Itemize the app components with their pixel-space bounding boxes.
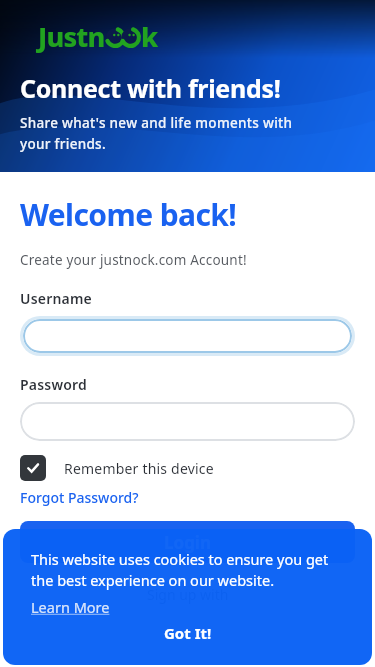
staticText: Sign up with bbox=[147, 585, 229, 604]
button[interactable] bbox=[20, 402, 355, 441]
staticText: Forgot Password? bbox=[20, 488, 139, 507]
button[interactable]: Forgot Password? bbox=[20, 488, 139, 507]
staticText: Learn More bbox=[31, 597, 110, 617]
button[interactable]: Learn More bbox=[31, 597, 110, 617]
button[interactable]: Login bbox=[20, 521, 355, 563]
staticText: Got It! bbox=[164, 623, 212, 643]
button[interactable] bbox=[23, 319, 352, 353]
staticText: Password bbox=[20, 375, 88, 394]
staticText: This website uses cookies to ensure you … bbox=[31, 549, 329, 591]
staticText: Remember this device bbox=[64, 459, 214, 478]
staticText: Justn bbox=[38, 18, 105, 55]
button[interactable]: Remember this device bbox=[20, 455, 214, 481]
button[interactable]: Got It! bbox=[150, 619, 226, 647]
staticText: Create your justnock.com Account! bbox=[20, 251, 247, 269]
staticText: Share what's new and life moments with y… bbox=[20, 114, 293, 153]
staticText: Welcome back! bbox=[20, 194, 237, 235]
staticText: k bbox=[141, 18, 158, 55]
staticText: Connect with friends! bbox=[20, 71, 281, 105]
staticText: Username bbox=[20, 289, 92, 308]
